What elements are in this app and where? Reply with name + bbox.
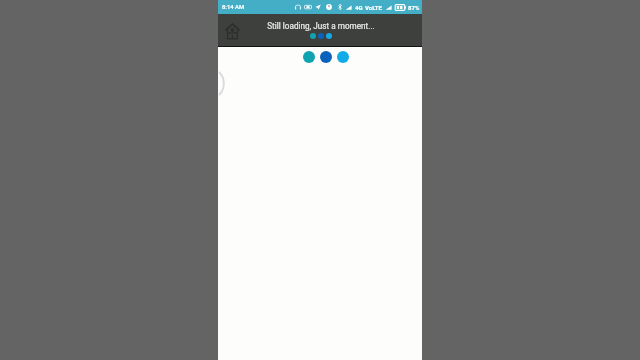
staticText: Still loading, Just a moment... <box>267 21 375 31</box>
staticText: 87% <box>408 4 420 11</box>
staticText: VoLTE <box>365 4 382 11</box>
staticText: 8:14 AM <box>222 4 245 11</box>
button[interactable]: Home <box>217 15 247 48</box>
staticText: 4G <box>355 4 363 11</box>
